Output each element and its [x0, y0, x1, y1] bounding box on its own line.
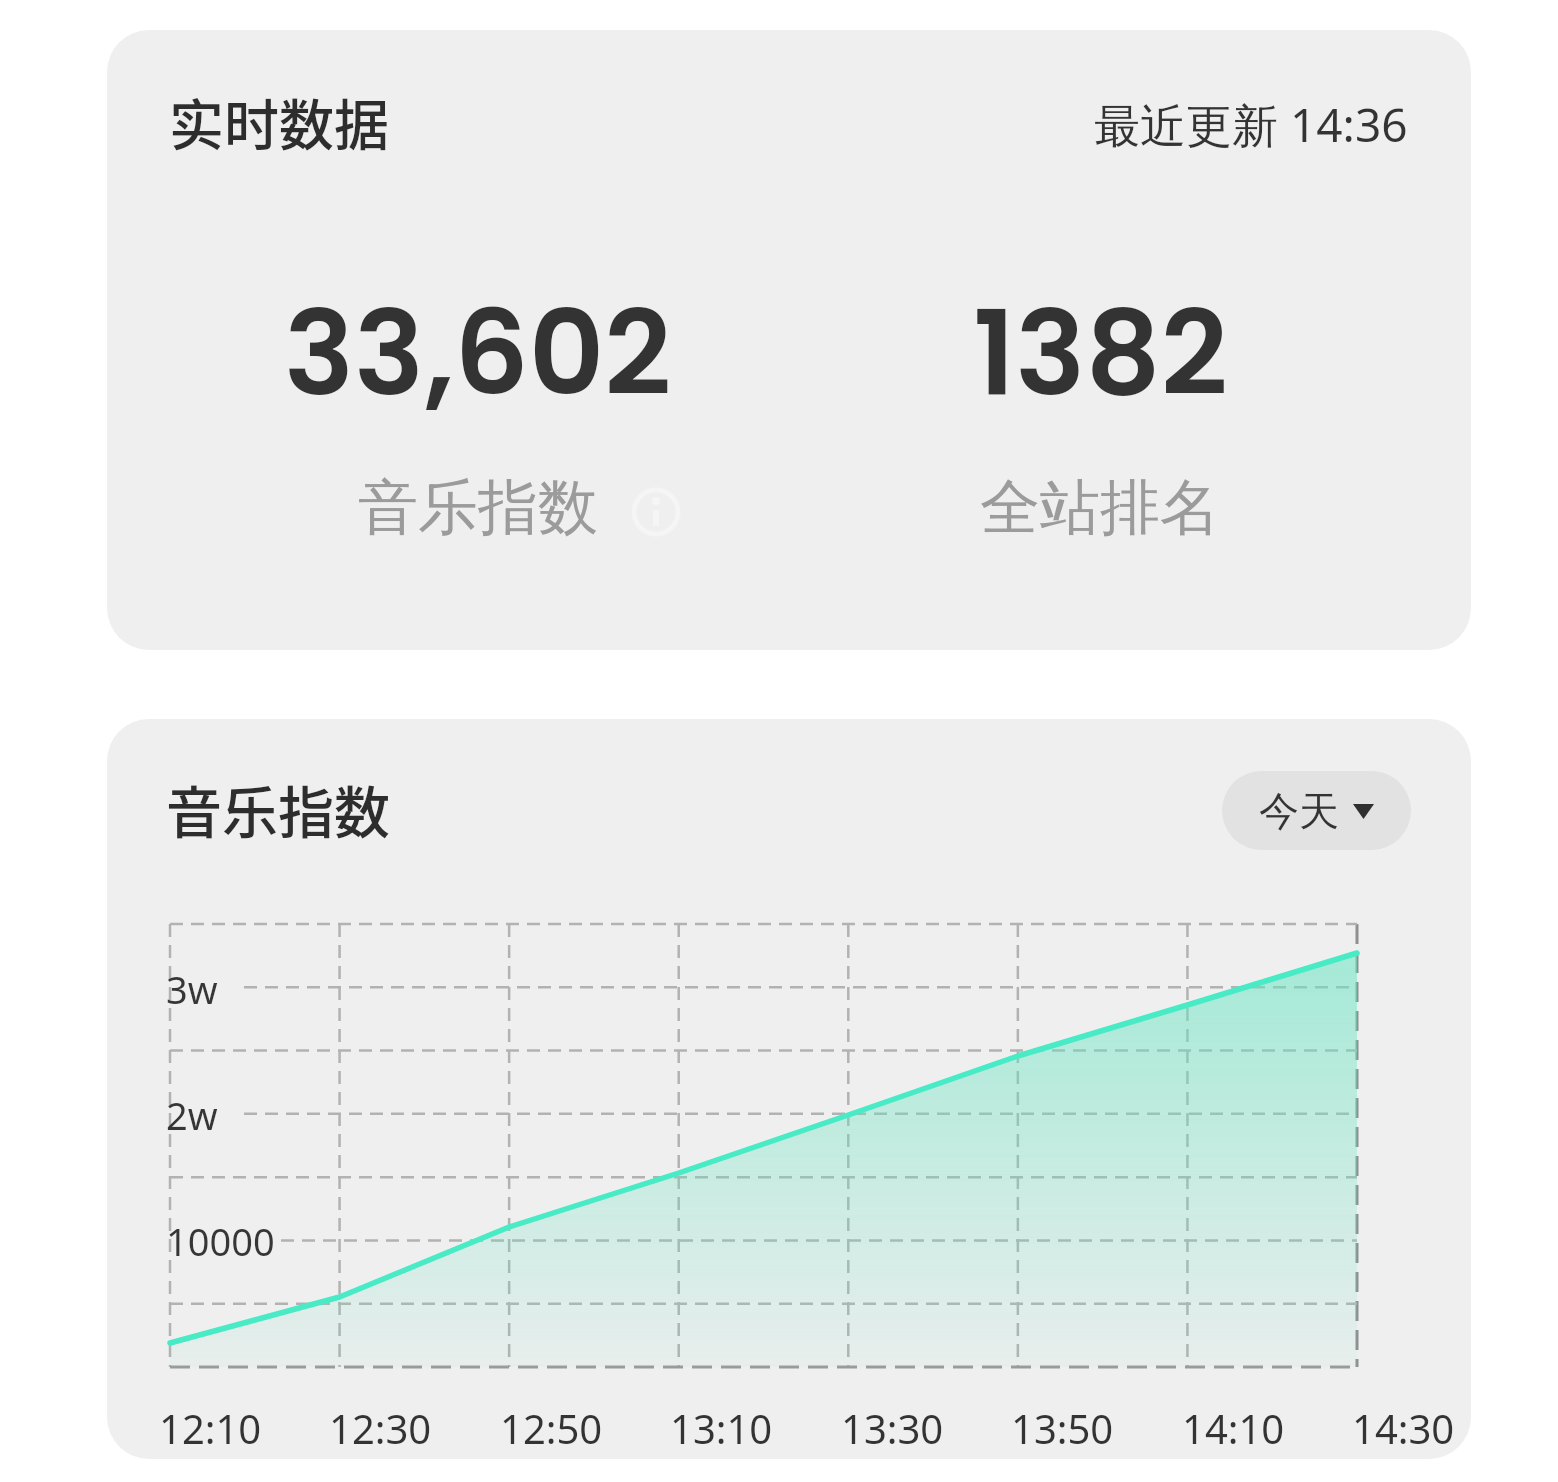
staticText: 最近更新 14:36	[1094, 93, 1408, 156]
staticText: 14:30	[1352, 1401, 1455, 1453]
staticText: 13:50	[1011, 1401, 1114, 1453]
button[interactable]: 今天	[1222, 771, 1411, 850]
staticText: 今天	[1259, 786, 1339, 836]
staticText: 12:30	[329, 1401, 432, 1453]
staticText: 10000	[166, 1215, 275, 1267]
staticText: 33,602	[284, 271, 672, 411]
staticText: 实时数据	[169, 81, 390, 161]
staticText: 14:10	[1182, 1401, 1285, 1453]
staticText: 3w	[166, 963, 218, 1015]
staticText: 12:10	[159, 1401, 262, 1453]
staticText: 音乐指数	[358, 470, 598, 540]
staticText: 13:30	[841, 1401, 944, 1453]
staticText: 全站排名	[980, 470, 1220, 540]
staticText: 1382	[973, 271, 1228, 411]
staticText: 13:10	[670, 1401, 773, 1453]
staticText: 音乐指数	[166, 768, 390, 848]
button[interactable]: 音乐指数	[107, 470, 849, 540]
staticText: 12:50	[500, 1401, 603, 1453]
staticText: 2w	[166, 1089, 218, 1141]
